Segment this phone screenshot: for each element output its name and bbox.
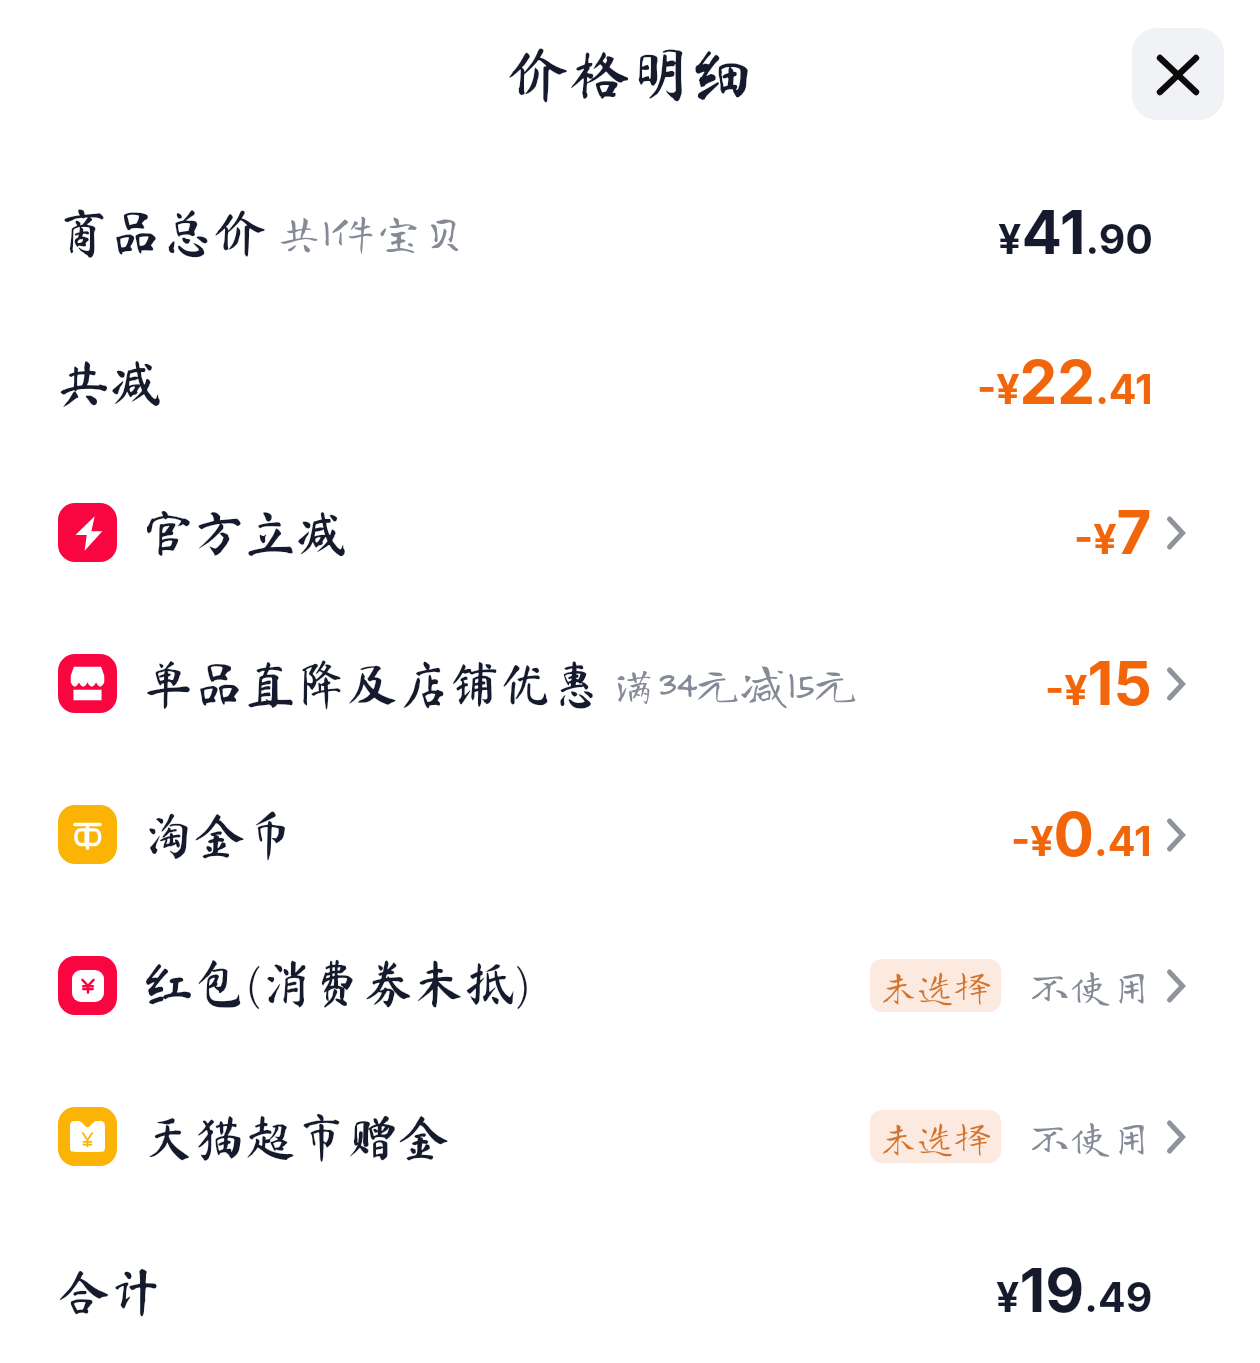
button[interactable]: 单品直降及店铺优惠 <box>0 608 1260 759</box>
button[interactable]: 红包(消费券未抵) <box>0 910 1260 1061</box>
staticText: 未选择 <box>880 1118 991 1155</box>
staticText: 共1件宝贝 <box>276 209 468 255</box>
staticText: 红包(消费券未抵) <box>143 956 532 1015</box>
staticText: 不使用 <box>1029 1116 1152 1157</box>
staticText: ¥41.90 <box>998 196 1153 269</box>
staticText: 合计 <box>58 1265 163 1317</box>
staticText: -¥22.41 <box>977 346 1153 419</box>
staticText: 满34元减15元 <box>611 661 859 707</box>
button[interactable]: Close <box>1132 28 1224 120</box>
button[interactable]: 淘金币 <box>0 759 1260 910</box>
staticText: -¥0.41 <box>1011 798 1152 871</box>
staticText: ¥19.49 <box>996 1254 1153 1327</box>
button[interactable]: 天猫超市赠金 <box>0 1061 1260 1212</box>
staticText: 共减 <box>58 356 163 408</box>
staticText: -¥7 <box>1074 496 1152 569</box>
staticText: 天猫超市赠金 <box>143 1111 450 1162</box>
staticText: 单品直降及店铺优惠 <box>143 658 603 709</box>
staticText: 商品总价 <box>58 206 267 258</box>
button[interactable]: 官方立减 <box>0 457 1260 608</box>
staticText: 未选择 <box>880 967 991 1004</box>
staticText: 不使用 <box>1029 965 1152 1006</box>
staticText: 淘金币 <box>143 809 297 860</box>
staticText: 价格明细 <box>508 43 753 104</box>
staticText: 官方立减 <box>143 507 348 558</box>
staticText: -¥15 <box>1045 647 1152 720</box>
